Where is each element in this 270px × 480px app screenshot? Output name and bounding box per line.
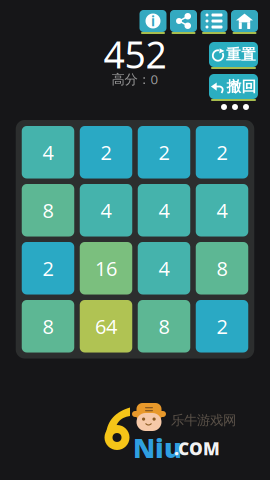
staticText: 高分：0 xyxy=(111,70,158,88)
button[interactable]: 重置 xyxy=(209,42,258,69)
staticText: 8 xyxy=(42,313,53,340)
button[interactable]: Info xyxy=(139,10,166,34)
staticText: 4 xyxy=(100,197,111,224)
staticText: 4 xyxy=(158,197,169,224)
staticText: 乐牛游戏网 xyxy=(171,412,236,428)
staticText: 2 xyxy=(216,313,227,340)
staticText: 8 xyxy=(216,255,227,282)
staticText: 4 xyxy=(42,139,53,166)
button[interactable]: Home xyxy=(231,10,258,34)
staticText: Niu xyxy=(133,430,182,465)
button[interactable]: Share xyxy=(170,10,197,34)
button[interactable]: 撤回 xyxy=(209,74,258,101)
staticText: 2 xyxy=(42,255,53,282)
staticText: 8 xyxy=(42,197,53,224)
staticText: 撤回 xyxy=(226,77,256,95)
staticText: 64 xyxy=(95,313,117,340)
staticText: 452 xyxy=(103,29,166,79)
staticText: 8 xyxy=(158,313,169,340)
staticText: i xyxy=(151,12,155,30)
staticText: 4 xyxy=(158,255,169,282)
staticText: 4 xyxy=(216,197,227,224)
staticText: .COM xyxy=(174,437,220,460)
staticText: 2 xyxy=(216,139,227,166)
button[interactable]: Leaderboard xyxy=(200,10,227,34)
staticText: 16 xyxy=(95,255,117,282)
staticText: 2 xyxy=(158,139,169,166)
staticText: 2 xyxy=(100,139,111,166)
staticText: 重置 xyxy=(226,45,256,63)
